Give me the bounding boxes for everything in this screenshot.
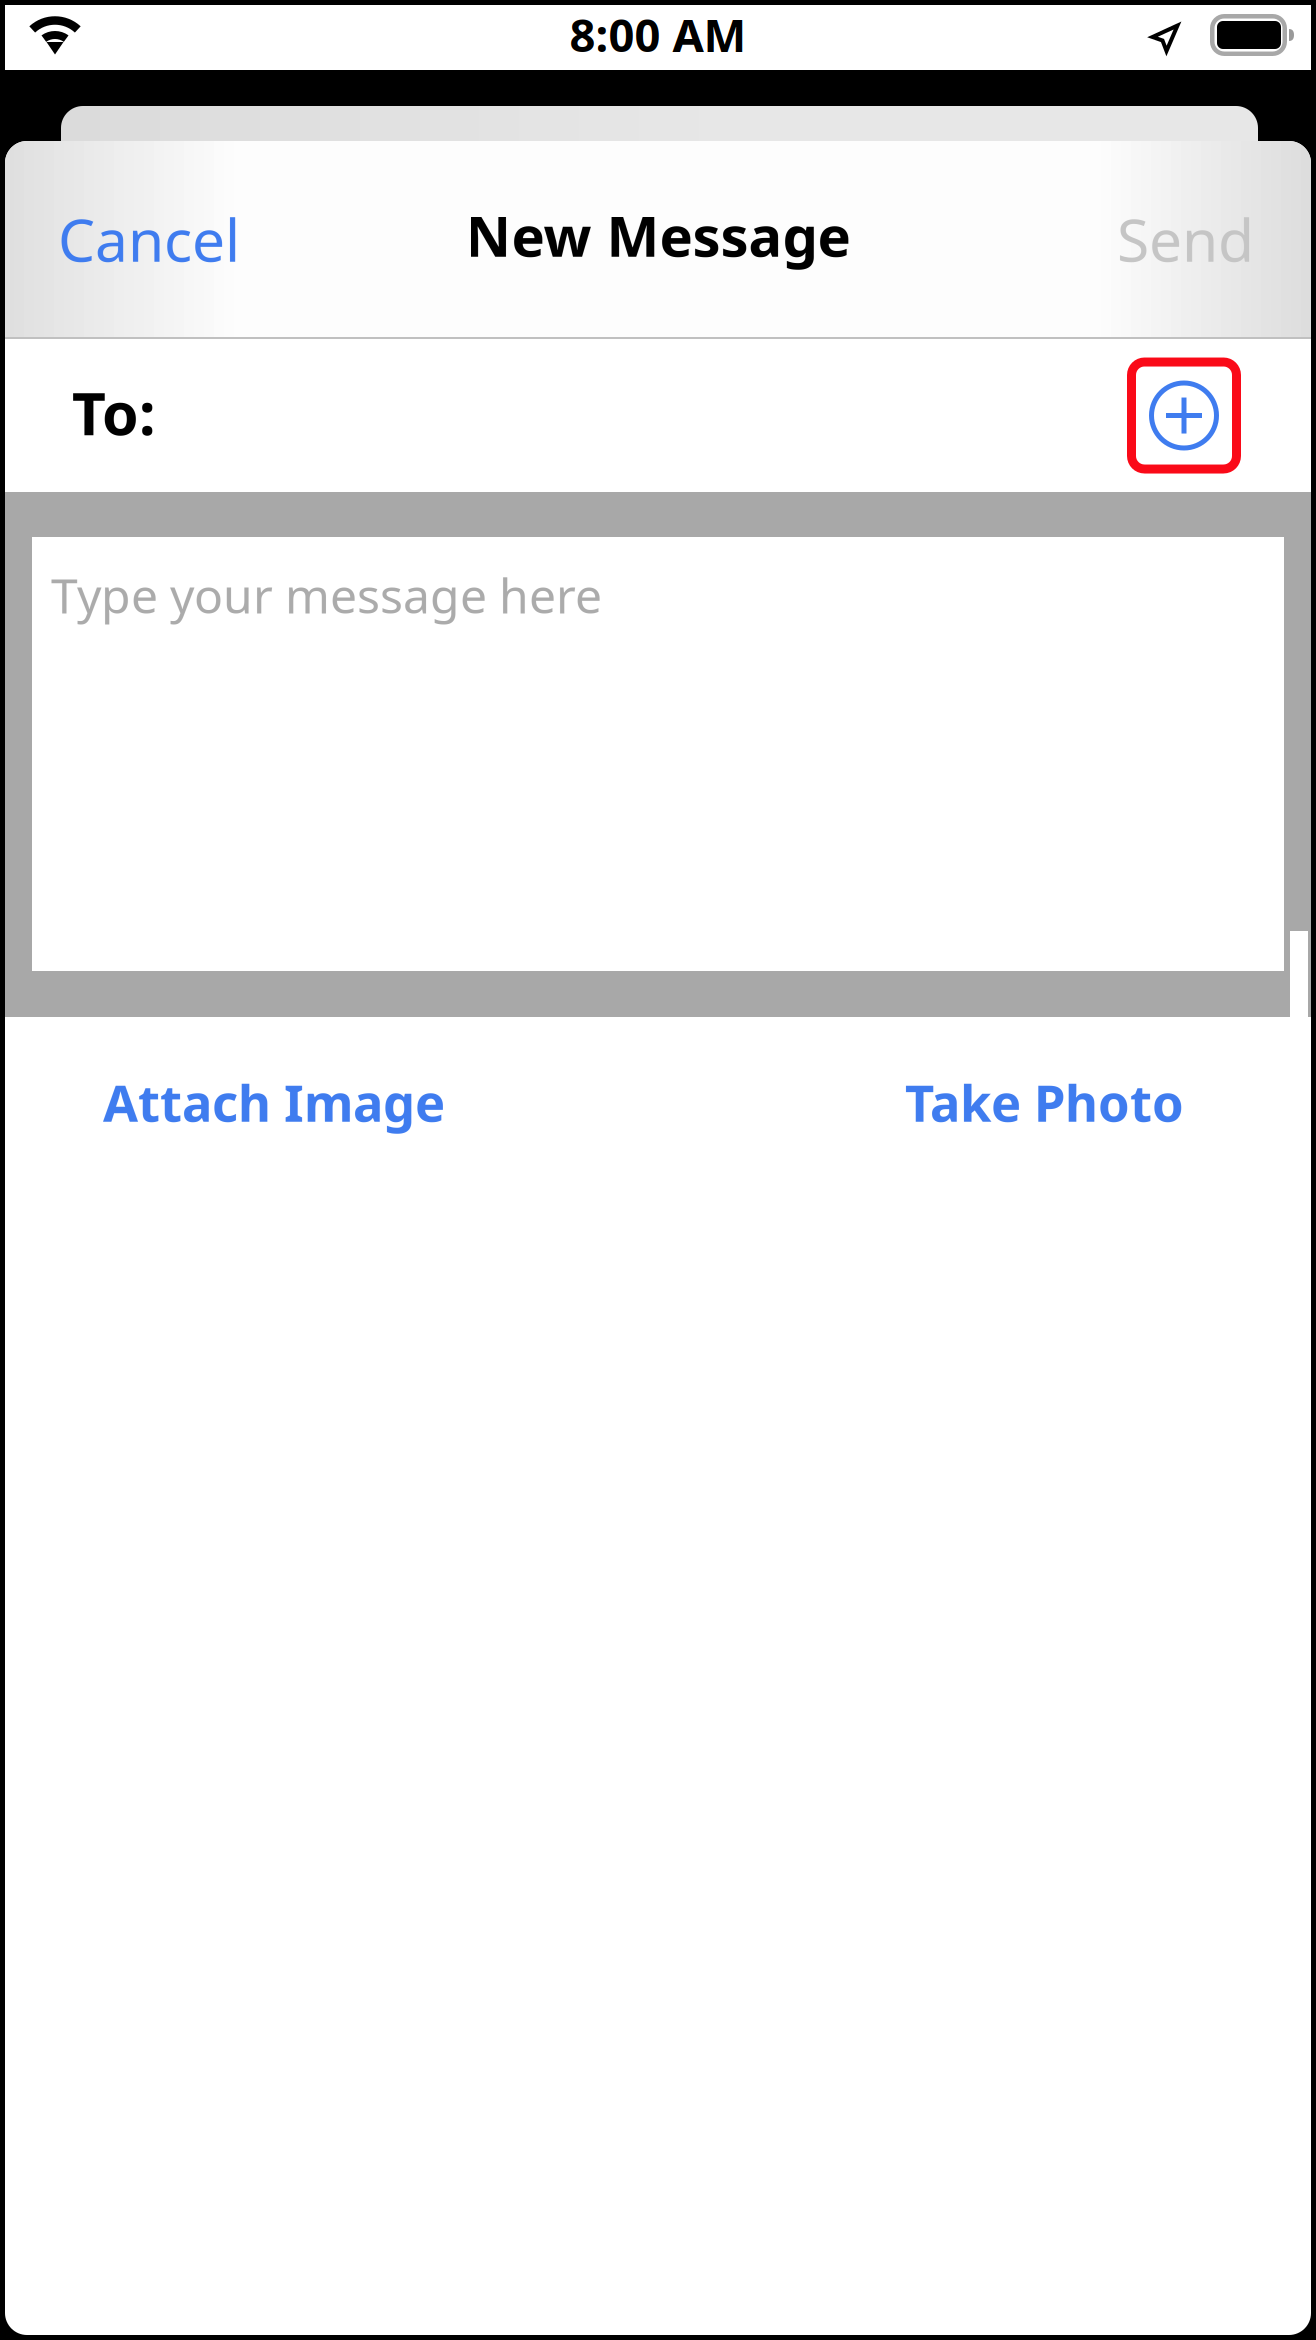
button[interactable]: Send (1105, 174, 1266, 304)
staticText: Type your message here (51, 563, 602, 627)
staticText: Cancel (58, 200, 240, 278)
button[interactable]: Attach Image (89, 1044, 459, 1160)
staticText: Take Photo (905, 1068, 1184, 1136)
staticText: 8:00 AM (569, 4, 746, 65)
button[interactable]: Message body (32, 537, 1284, 971)
button[interactable]: Cancel (46, 174, 252, 304)
staticText: Attach Image (103, 1068, 445, 1136)
staticText: Send (1117, 200, 1254, 278)
button[interactable]: Take Photo (891, 1044, 1198, 1160)
staticText: New Message (465, 198, 850, 272)
button[interactable]: Add recipient (1127, 357, 1241, 473)
staticText: To: (72, 373, 155, 451)
